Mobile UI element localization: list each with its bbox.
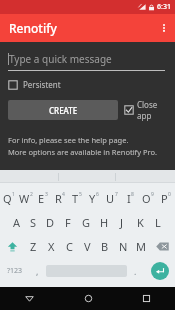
staticText: R [55, 191, 62, 206]
button[interactable]: Close app [124, 99, 170, 121]
button[interactable]: K [131, 210, 149, 234]
staticText: 2 [30, 191, 33, 198]
button[interactable]: J [113, 210, 131, 234]
button[interactable]: Q [0, 186, 17, 210]
button[interactable]: CREATE [8, 100, 118, 120]
button[interactable]: D [42, 210, 59, 234]
staticText: P [161, 191, 168, 206]
staticText: A [13, 215, 21, 230]
staticText: V [84, 239, 91, 254]
staticText: Close app [137, 99, 170, 121]
button[interactable]: A [8, 210, 25, 234]
button[interactable]: X [42, 234, 60, 258]
staticText: 8 [131, 191, 134, 198]
staticText: 0 [168, 191, 171, 198]
staticText: J [120, 215, 124, 230]
staticText: T [72, 191, 79, 206]
staticText: . [134, 265, 137, 277]
staticText: 3 [45, 191, 48, 198]
button[interactable]: L [149, 210, 167, 234]
staticText: 6:31 [157, 2, 171, 12]
staticText: S [30, 215, 37, 230]
button[interactable]: Recent apps [117, 287, 175, 310]
button[interactable]: More options [153, 14, 175, 42]
button[interactable]: U [103, 186, 121, 210]
staticText: , [36, 265, 39, 277]
button[interactable]: M [132, 234, 150, 258]
button[interactable]: W [17, 186, 34, 210]
staticText: More options are available in Renotify P… [8, 147, 157, 157]
staticText: Persistent [23, 79, 61, 90]
staticText: H [100, 215, 109, 230]
button[interactable]: Back [0, 287, 59, 310]
staticText: Renotify [9, 20, 57, 36]
button[interactable]: ?123 [0, 258, 29, 284]
staticText: M [136, 239, 146, 254]
staticText: N [119, 239, 128, 254]
button[interactable]: O [139, 186, 157, 210]
staticText: 1 [12, 191, 15, 198]
staticText: U [106, 191, 115, 206]
staticText: K [137, 215, 144, 230]
button[interactable]: Home [59, 287, 117, 310]
staticText: 6 [96, 191, 99, 198]
staticText: 7 [115, 191, 118, 198]
staticText: Type a quick message [9, 52, 112, 66]
button[interactable]: . [127, 258, 144, 284]
staticText: W [19, 191, 30, 206]
staticText: O [142, 191, 151, 206]
button[interactable]: Persistent [8, 79, 61, 90]
staticText: B [101, 239, 109, 254]
staticText: D [46, 215, 55, 230]
staticText: Q [3, 191, 12, 206]
staticText: For info, please see the help page. [8, 135, 129, 145]
staticText: F [65, 215, 71, 230]
button[interactable]: Enter [144, 258, 175, 284]
button[interactable]: N [114, 234, 132, 258]
staticText: X [48, 239, 55, 254]
staticText: 9 [151, 191, 154, 198]
button[interactable]: Y [85, 186, 103, 210]
button[interactable]: , [29, 258, 46, 284]
button[interactable]: Shift [0, 234, 24, 258]
staticText: G [82, 215, 91, 230]
button[interactable]: Backspace [150, 234, 175, 258]
button[interactable]: P [157, 186, 175, 210]
staticText: C [66, 239, 73, 254]
staticText: 4 [62, 191, 65, 198]
staticText: Z [30, 239, 37, 254]
button[interactable]: Type a quick message [8, 52, 165, 71]
staticText: CREATE [49, 105, 78, 116]
staticText: I [127, 191, 131, 206]
button[interactable]: V [78, 234, 96, 258]
button[interactable]: S [25, 210, 42, 234]
button[interactable]: R [51, 186, 68, 210]
button[interactable]: T [68, 186, 85, 210]
staticText: L [155, 215, 161, 230]
staticText: 5 [79, 191, 82, 198]
button[interactable]: C [60, 234, 78, 258]
button[interactable]: I [121, 186, 139, 210]
button[interactable]: B [96, 234, 114, 258]
staticText: Y [89, 191, 96, 206]
button[interactable]: H [95, 210, 113, 234]
button[interactable]: G [77, 210, 95, 234]
button[interactable]: Z [24, 234, 42, 258]
button[interactable]: F [59, 210, 77, 234]
staticText: E [38, 191, 45, 206]
button[interactable]: E [34, 186, 51, 210]
staticText: ?123 [7, 266, 23, 276]
